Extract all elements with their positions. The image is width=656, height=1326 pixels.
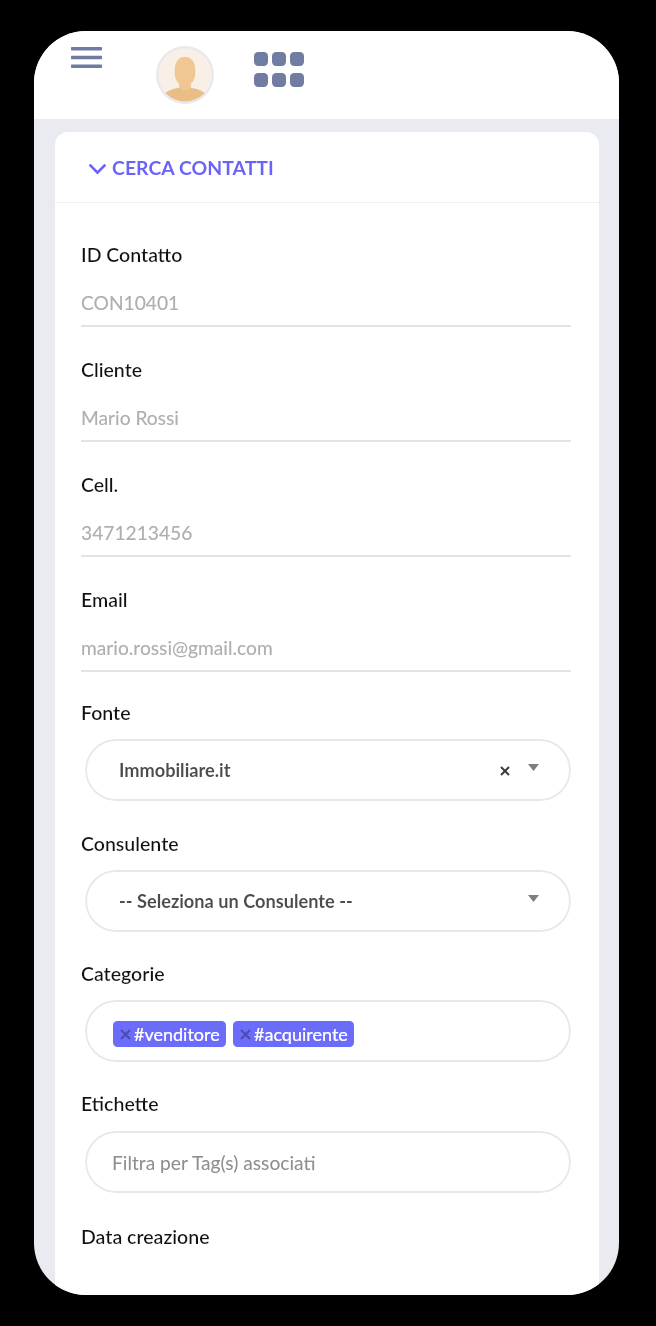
staticText: Cliente — [81, 358, 143, 381]
button[interactable]: Cliente — [81, 358, 571, 468]
staticText: mario.rossi@gmail.com — [81, 636, 273, 659]
staticText: Cell. — [81, 473, 119, 496]
staticText: Immobiliare.it — [119, 759, 231, 781]
button[interactable]: Immobiliare.it — [85, 739, 571, 801]
staticText: Mario Rossi — [81, 406, 179, 429]
button[interactable]: Email — [81, 588, 571, 698]
button[interactable]: ID Contatto — [81, 243, 571, 353]
button[interactable]: #acquirente — [233, 1021, 354, 1047]
staticText: Data creazione — [81, 1225, 210, 1248]
staticText: CERCA CONTATTI — [112, 156, 274, 179]
button[interactable]: Apps — [246, 44, 312, 95]
button[interactable]: CERCA CONTATTI — [55, 132, 599, 202]
staticText: #acquirente — [254, 1023, 348, 1045]
staticText: 3471213456 — [81, 521, 193, 544]
button[interactable]: #venditore — [85, 1000, 571, 1062]
staticText: Categorie — [81, 962, 165, 985]
staticText: Fonte — [81, 701, 131, 724]
staticText: CON10401 — [81, 291, 180, 314]
button[interactable]: Cell. — [81, 473, 571, 583]
staticText: Consulente — [81, 832, 179, 855]
button[interactable]: Menu — [61, 37, 112, 78]
staticText: -- Seleziona un Consulente -- — [119, 890, 353, 912]
staticText: ID Contatto — [81, 243, 183, 266]
staticText: #venditore — [134, 1023, 220, 1045]
staticText: Etichette — [81, 1092, 159, 1115]
button[interactable]: Filtra per Tag(s) associati — [85, 1131, 571, 1193]
button[interactable]: -- Seleziona un Consulente -- — [85, 870, 571, 932]
staticText: Filtra per Tag(s) associati — [112, 1151, 316, 1174]
button[interactable]: Profile — [152, 42, 217, 107]
button[interactable]: #venditore — [113, 1021, 226, 1047]
staticText: Email — [81, 588, 128, 611]
